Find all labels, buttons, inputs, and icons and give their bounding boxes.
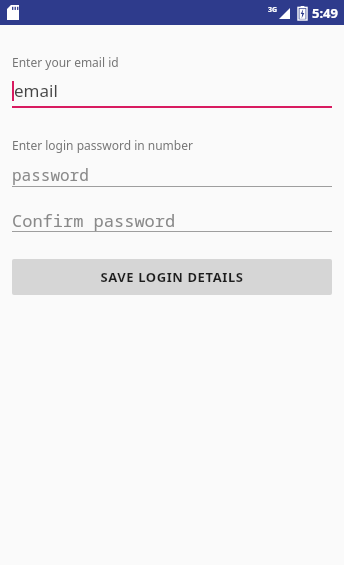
staticText: password <box>12 164 89 186</box>
button[interactable]: Confirm password <box>12 209 332 231</box>
staticText: SAVE LOGIN DETAILS <box>100 268 244 286</box>
button[interactable]: email <box>12 79 332 106</box>
staticText: 5:49 <box>312 4 338 22</box>
other: Battery charging <box>298 6 307 20</box>
other: Signal strength <box>279 8 290 19</box>
staticText: Enter login password in number <box>12 137 193 153</box>
staticText: Enter your email id <box>12 54 119 70</box>
button[interactable]: SAVE LOGIN DETAILS <box>12 259 332 295</box>
other: SD card <box>7 5 19 20</box>
staticText: 3G <box>268 5 278 15</box>
staticText: email <box>14 79 58 102</box>
staticText: Confirm password <box>12 209 176 231</box>
button[interactable]: password <box>12 163 332 186</box>
